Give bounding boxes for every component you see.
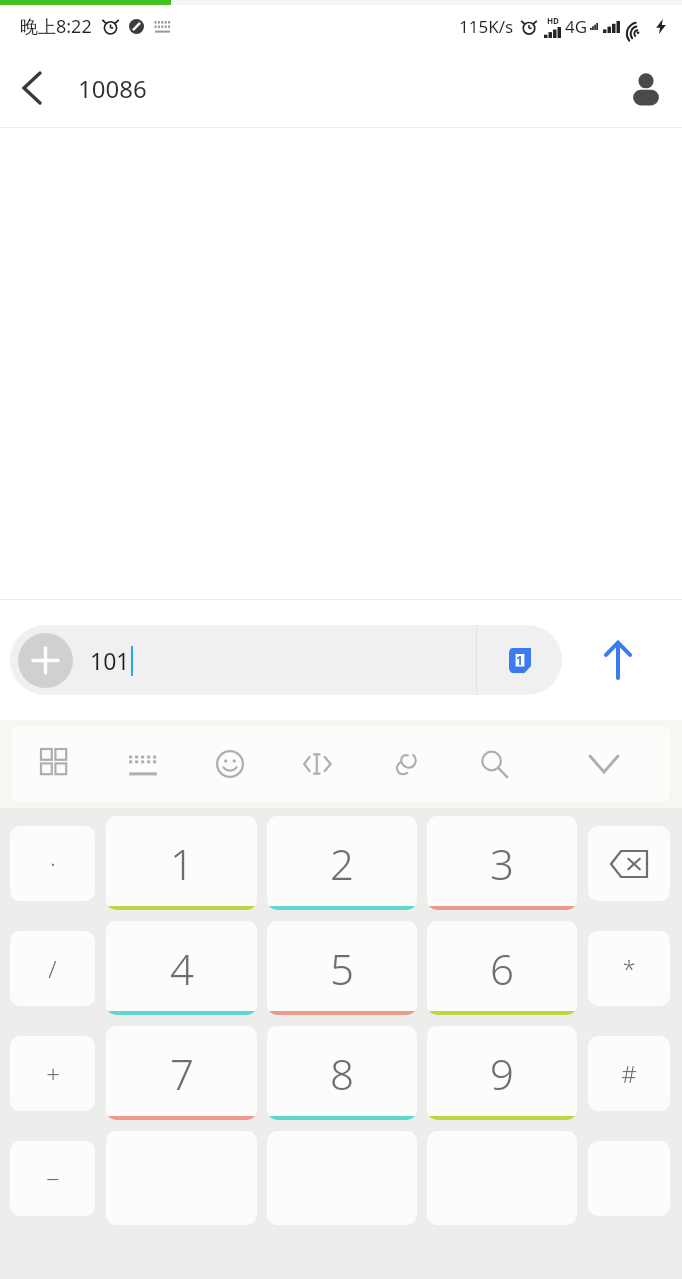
button[interactable]: 8 <box>267 1026 417 1120</box>
button[interactable]: Keyboard layout <box>99 726 186 802</box>
staticText: / <box>48 952 57 985</box>
button[interactable]: Back <box>0 48 64 128</box>
staticText: 115K/s <box>459 15 514 38</box>
button[interactable]: 9 <box>427 1026 577 1120</box>
staticText: HD <box>547 15 559 26</box>
staticText: 6 <box>490 940 514 997</box>
button[interactable]: · <box>10 826 95 901</box>
staticText: 9 <box>490 1045 514 1102</box>
staticText: 2 <box>330 835 354 892</box>
button[interactable]: 2 <box>267 816 417 910</box>
button[interactable]: Add attachment <box>10 625 562 695</box>
staticText: 7 <box>170 1045 194 1102</box>
button[interactable]: * <box>588 931 670 1006</box>
staticText: 3 <box>490 835 514 892</box>
button[interactable]: 1 <box>106 816 257 910</box>
button[interactable]: Send <box>562 625 674 695</box>
button[interactable]: Apps <box>12 726 99 802</box>
button[interactable]: 4 <box>106 921 257 1015</box>
button[interactable]: Edit text <box>274 726 362 802</box>
staticText: # <box>621 1057 637 1090</box>
staticText: 1 <box>516 652 523 668</box>
button[interactable]: 7 <box>106 1026 257 1120</box>
staticText: − <box>46 1162 60 1195</box>
staticText: 8 <box>330 1045 354 1102</box>
button[interactable]: Add attachment <box>18 633 73 688</box>
staticText: 4 <box>170 940 194 997</box>
button[interactable]: 3 <box>427 816 577 910</box>
button[interactable]: 6 <box>427 921 577 1015</box>
button[interactable]: 5 <box>267 921 417 1015</box>
button[interactable]: Clipboard <box>362 726 450 802</box>
button[interactable]: / <box>10 931 95 1006</box>
staticText: · <box>50 847 56 880</box>
staticText: 10086 <box>78 72 147 105</box>
button[interactable]: Search <box>450 726 538 802</box>
button[interactable]: Emoji <box>186 726 274 802</box>
button[interactable]: + <box>10 1036 95 1111</box>
button[interactable]: # <box>588 1036 670 1111</box>
button[interactable]: SIM 1 <box>477 625 562 695</box>
staticText: * <box>622 952 636 985</box>
staticText: 晚上8:22 <box>20 14 92 39</box>
button[interactable]: Backspace <box>588 826 670 901</box>
button[interactable]: − <box>10 1141 95 1216</box>
staticText: 4G <box>565 15 588 38</box>
staticText: 5 <box>330 940 354 997</box>
staticText: 1 <box>170 835 194 892</box>
staticText: 101 <box>90 645 130 676</box>
button[interactable]: Hide keyboard <box>538 726 670 802</box>
button[interactable]: Contact info <box>610 48 682 128</box>
staticText: + <box>46 1057 60 1090</box>
